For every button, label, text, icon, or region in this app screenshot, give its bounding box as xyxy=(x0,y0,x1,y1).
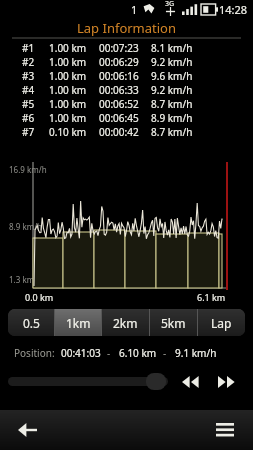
staticText: 14:28 xyxy=(219,2,248,17)
staticText: 8.1 km/h xyxy=(151,41,193,55)
staticText: 1.3 km/h xyxy=(9,274,43,285)
button[interactable]: #7 xyxy=(0,125,253,139)
staticText: 1.00 km xyxy=(49,55,87,69)
button[interactable]: #2 xyxy=(0,55,253,69)
staticText: 8.7 km/h xyxy=(151,97,193,111)
staticText: 0.0 km xyxy=(25,291,54,303)
staticText: 16.9 km/h xyxy=(9,164,47,175)
staticText: 00:41:03 xyxy=(61,346,101,360)
staticText: #4 xyxy=(22,83,35,97)
staticText: Lap Information xyxy=(0,19,253,37)
staticText: #3 xyxy=(22,69,35,83)
button[interactable]: Back xyxy=(10,412,46,448)
staticText: 6.1 km xyxy=(197,291,226,303)
button[interactable]: #1 xyxy=(0,41,253,55)
staticText: 9.2 km/h xyxy=(151,55,193,69)
button[interactable]: 5km xyxy=(150,309,197,336)
button[interactable]: #4 xyxy=(0,83,253,97)
button[interactable]: Next xyxy=(214,371,240,393)
staticText: Lap xyxy=(211,315,232,331)
staticText: 1 xyxy=(131,2,138,17)
staticText: 2km xyxy=(113,315,138,331)
staticText: 1.00 km xyxy=(49,97,87,111)
staticText: - xyxy=(163,346,167,360)
staticText: 00:00:42 xyxy=(99,125,139,139)
staticText: 5km xyxy=(161,315,186,331)
staticText: Position: xyxy=(14,346,55,360)
staticText: 1.00 km xyxy=(49,41,87,55)
staticText: 1.00 km xyxy=(49,111,87,125)
staticText: 9.1 km/h xyxy=(175,346,217,360)
staticText: 8.9 km/h xyxy=(151,111,193,125)
button[interactable]: #6 xyxy=(0,111,253,125)
staticText: #6 xyxy=(22,111,35,125)
staticText: 3G xyxy=(165,0,175,9)
staticText: 8.7 km/h xyxy=(151,125,193,139)
button[interactable]: #5 xyxy=(0,97,253,111)
staticText: 1km xyxy=(66,315,91,331)
staticText: 0.5 xyxy=(23,315,40,331)
staticText: #2 xyxy=(22,55,35,69)
staticText: 1.00 km xyxy=(49,83,87,97)
button[interactable]: 2km xyxy=(102,309,149,336)
staticText: 9.6 km/h xyxy=(151,69,193,83)
staticText: #7 xyxy=(22,125,35,139)
staticText: - xyxy=(107,346,111,360)
staticText: #5 xyxy=(22,97,35,111)
button[interactable]: #3 xyxy=(0,69,253,83)
staticText: 00:06:29 xyxy=(99,55,139,69)
staticText: 00:06:33 xyxy=(99,83,139,97)
staticText: 9.2 km/h xyxy=(151,83,193,97)
staticText: 00:06:52 xyxy=(99,97,139,111)
button[interactable]: 0.5 xyxy=(8,309,54,336)
button[interactable]: 1km xyxy=(55,309,101,336)
staticText: 00:06:16 xyxy=(99,69,139,83)
staticText: 00:07:23 xyxy=(99,41,139,55)
staticText: #1 xyxy=(22,41,35,55)
staticText: 00:06:45 xyxy=(99,111,139,125)
staticText: 8.9 km/h xyxy=(9,221,43,232)
button[interactable]: Previous xyxy=(178,371,204,393)
button[interactable] xyxy=(8,377,168,386)
staticText: 1.00 km xyxy=(49,69,87,83)
button[interactable]: Lap xyxy=(198,309,245,336)
button[interactable]: Menu xyxy=(207,412,243,448)
staticText: 6.10 km xyxy=(119,346,157,360)
staticText: 0.10 km xyxy=(49,125,87,139)
